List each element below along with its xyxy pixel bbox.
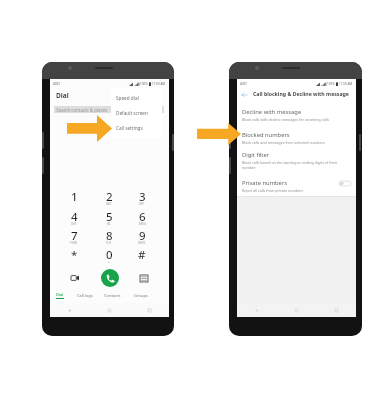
button[interactable]: Home [89,303,129,317]
staticText: PQRS [70,241,78,245]
staticText: MNO [139,222,146,226]
staticText: 100% [140,82,148,86]
staticText: 9 [139,228,146,244]
staticText: Decline with message [242,108,302,116]
staticText: 3 [139,189,146,205]
staticText: Dial [56,292,64,297]
staticText: Speed dial [116,95,139,101]
button[interactable]: 8 [96,227,122,246]
button[interactable]: 7 [61,227,87,246]
staticText: Block calls based on the starting or end… [242,160,338,165]
staticText: 11:00 AM [152,82,166,86]
button[interactable]: 2 [96,188,122,207]
staticText: Dial [56,91,69,100]
button[interactable]: Call logs [72,289,98,302]
button[interactable]: Decline with message [237,108,356,122]
staticText: # [138,247,146,263]
staticText: Contacts [104,293,121,298]
staticText: 2 [106,189,113,205]
button[interactable]: Groups [128,289,154,302]
button[interactable]: Call [101,269,119,287]
button[interactable]: Call settings [111,120,162,135]
staticText: WXYZ [138,241,146,245]
button[interactable]: Blocked numbers [237,131,356,145]
button[interactable]: Dial [47,289,73,302]
staticText: AT&T [240,82,247,86]
staticText: GHI [71,222,77,226]
button[interactable]: Keypad [137,271,151,285]
button[interactable]: Default screen [111,105,162,120]
staticText: 11:00 AM [339,82,353,86]
staticText: Call logs [77,293,93,298]
button[interactable]: 5 [96,208,122,227]
staticText: 7 [71,228,78,244]
button[interactable]: Contacts [99,289,125,302]
staticText: Block calls and messages from selected n… [242,140,325,145]
staticText: Default screen [116,110,148,116]
staticText: Call blocking & Decline with message [253,90,349,97]
button[interactable]: 9 [129,227,155,246]
button[interactable]: * [61,246,87,265]
button[interactable]: Search contacts & places [54,106,164,113]
staticText: Reject all calls from private numbers [242,188,304,193]
staticText: 8 [106,228,113,244]
staticText: number [242,165,256,170]
staticText: Blocked numbers [242,131,290,139]
staticText: * [71,247,78,263]
staticText: Search contacts & places [54,107,108,113]
staticText: DEF [139,202,145,206]
button[interactable]: Speed dial [111,90,162,105]
staticText: 100% [327,82,335,86]
staticText: Groups [134,293,148,298]
staticText: JKL [107,222,111,226]
staticText: 4 [71,209,78,225]
staticText: ABC [106,202,112,206]
button[interactable]: Video call [68,271,82,285]
button[interactable]: Toggle private numbers [339,181,351,186]
button[interactable]: 1 [61,188,87,207]
button[interactable]: Digit filter [237,151,356,170]
button[interactable]: # [129,246,155,265]
staticText: TUV [106,241,112,245]
button[interactable]: 3 [129,188,155,207]
staticText: + [108,260,110,264]
button[interactable]: Recents [129,303,169,317]
button[interactable]: Private numbers [237,179,356,193]
staticText: Digit filter [242,151,270,159]
staticText: 0 [106,247,113,263]
staticText: 1 [71,189,78,205]
button[interactable]: 6 [129,208,155,227]
staticText: AT&T [53,82,60,86]
button[interactable]: Back [238,88,251,101]
staticText: Call settings [116,125,143,131]
staticText: 6 [139,209,146,225]
button[interactable]: 0 [96,246,122,265]
staticText: 5 [106,209,113,225]
button[interactable]: 4 [61,208,87,227]
staticText: Block calls with decline messages for in… [242,117,330,122]
staticText: Private numbers [242,179,288,187]
